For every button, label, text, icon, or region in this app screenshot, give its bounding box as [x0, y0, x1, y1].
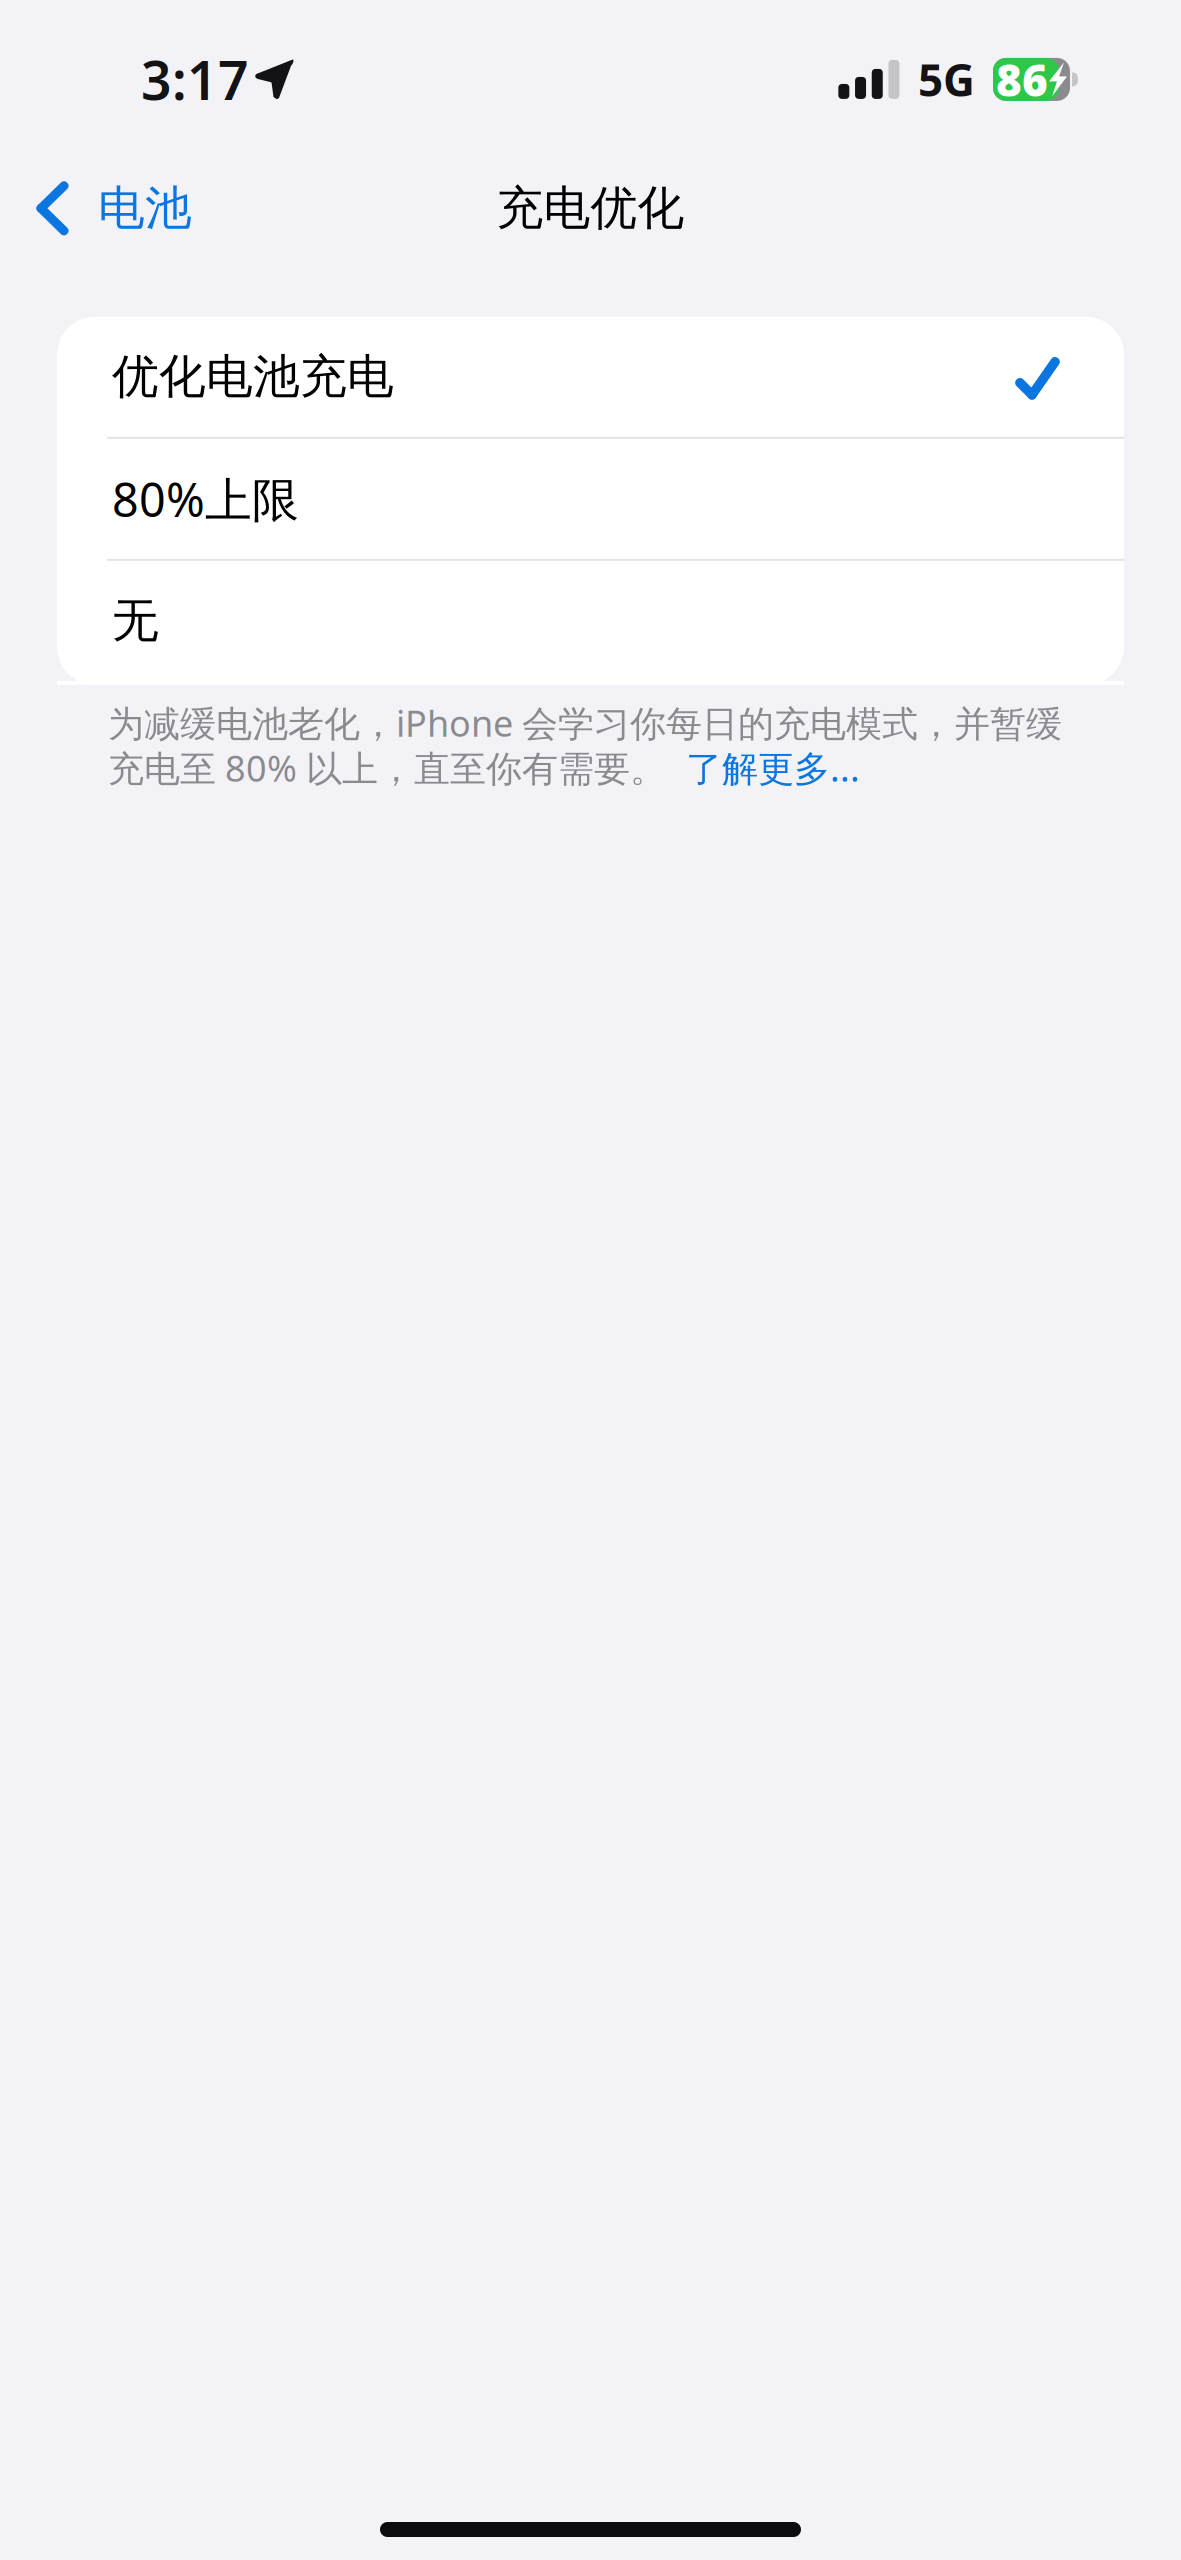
staticText: 优化电池充电: [112, 348, 394, 405]
staticText: 3:17: [141, 44, 249, 115]
staticText: 充电至 80% 以上，直至你有需要。: [108, 744, 666, 792]
staticText: 5G: [918, 50, 975, 109]
button[interactable]: 无: [57, 561, 1124, 681]
staticText: 电池: [98, 180, 192, 237]
staticText: 86: [996, 50, 1048, 109]
button[interactable]: 优化电池充电: [57, 317, 1124, 437]
button[interactable]: 电池: [0, 149, 216, 259]
staticText: 无: [112, 592, 159, 649]
button[interactable]: 80%上限: [57, 439, 1124, 559]
staticText: 为减缓电池老化，iPhone 会学习你每日的充电模式，并暂缓: [108, 699, 1062, 747]
staticText: 了解更多...: [686, 744, 860, 792]
button[interactable]: 了解更多...: [666, 744, 860, 792]
staticText: 80%上限: [112, 468, 299, 530]
staticText: 充电优化: [496, 180, 684, 237]
